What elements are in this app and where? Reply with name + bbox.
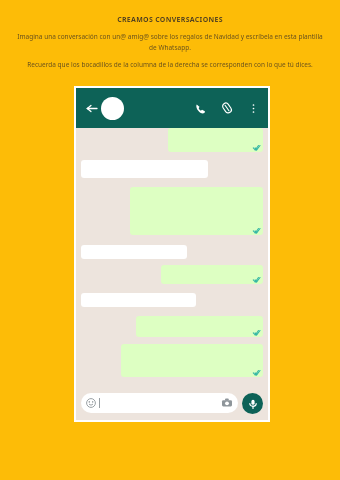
staticText: CREAMOS CONVERSACIONES [117, 15, 223, 25]
staticText: Imagina una conversación con un@ amig@ s… [16, 32, 324, 52]
button[interactable]: Sent message [136, 316, 263, 337]
button[interactable]: Sent message [121, 344, 263, 377]
button[interactable]: More options [245, 100, 261, 116]
button[interactable]: Call [191, 99, 209, 117]
button[interactable]: Sent message [168, 128, 263, 152]
button[interactable]: Message input [81, 393, 238, 413]
staticText: Recuerda que los bocadillos de la column… [16, 60, 324, 69]
button[interactable]: Camera [221, 397, 233, 409]
button[interactable]: Attach [218, 99, 236, 117]
button[interactable]: Back [83, 100, 99, 116]
button[interactable]: Sent message [130, 187, 263, 235]
button[interactable]: Contact avatar [101, 97, 124, 120]
button[interactable]: Voice message [242, 393, 263, 414]
button[interactable]: Sent message [161, 265, 263, 284]
